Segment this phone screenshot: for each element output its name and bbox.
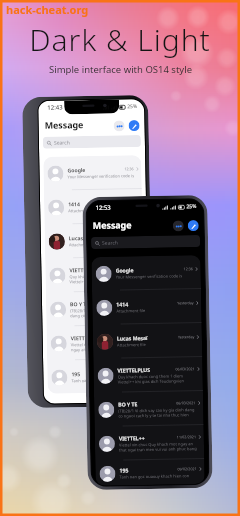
staticText: 06/03/2021 [117,300,137,305]
staticText: (TB)28/1 Vi dich vay cao ky gia dinh dan… [70,307,137,318]
button[interactable]: Google [43,155,142,191]
staticText: Yesterday [178,334,195,339]
staticText: VIETTELPLUS [117,365,176,374]
staticText: 12:53 [95,204,111,212]
staticText: 12:36 [124,166,134,171]
staticText: BO Y TE [70,299,117,307]
staticText: (TB)28/1 Vi dich vay cao ky gia dinh dan… [118,407,196,419]
button[interactable]: Lucas Mesaï [93,323,202,359]
staticText: Dark & Light [29,19,211,60]
staticText: hack-cheat.org [6,2,89,17]
button[interactable]: BO Y TE [46,291,144,327]
staticText: 12:43 [47,103,63,112]
staticText: 12:36 [183,266,194,271]
staticText: Message [93,218,132,231]
staticText: VIETTEL++ [119,433,177,442]
staticText: Attachment file [116,308,145,314]
staticText: 25% [127,103,137,110]
staticText: 06/03/2021 [116,266,136,271]
staticText: Yesterday [177,300,194,305]
staticText: 09/02/2021 [118,370,138,375]
staticText: 09/02/2021 [177,466,197,471]
staticText: Quy khach duoc cong them 1 diem Viettel+… [69,273,137,284]
staticText: 1414 [116,299,177,308]
staticText: Google [67,165,124,173]
button[interactable]: BO Y TE [94,391,204,427]
staticText: Google [115,265,184,274]
button[interactable]: Compose message [188,220,199,231]
staticText: VIETTELPLUS [69,265,116,273]
button[interactable]: VIETTELPLUS [45,257,144,293]
button[interactable]: Lucas Mesaï [44,223,143,259]
button[interactable]: 1414 [44,189,142,225]
staticText: 06/03/2021 [175,366,196,371]
button[interactable]: Compose message [128,120,140,131]
button[interactable]: 1414 [92,289,202,325]
staticText: VIETTEL++ [71,333,118,341]
staticText: Lucas Mesaï [117,333,178,342]
button[interactable]: Google [91,255,201,291]
button[interactable]: VIETTEL++ [95,425,204,461]
staticText: 11/02/2021 [118,334,138,339]
staticText: 25% [186,203,196,210]
button[interactable]: More options [113,120,125,131]
button[interactable]: VIETTEL++ [46,325,145,361]
staticText: 1414 [68,199,118,207]
staticText: Attachment file [69,242,98,247]
staticText: Search [54,139,70,147]
button[interactable]: More options [173,220,184,231]
staticText: 06/03/2021 [176,400,196,405]
button[interactable]: 195 [95,459,205,486]
staticText: Tanh oan goc ouaouy khach hien con duoc [119,473,198,480]
button[interactable]: Search [43,135,141,149]
staticText: Viettel xin chuc Quy khach mot ngay an t… [71,341,138,352]
staticText: Yesterday [119,234,136,239]
staticText: Message [44,118,84,131]
staticText: 195 [71,369,118,377]
button[interactable]: 195 [47,359,146,394]
button[interactable]: VIETTELPLUS [93,357,203,393]
staticText: Viettel xin chuc Quy khach mot ngay an t… [119,441,197,453]
staticText: Your Messenger verification code is G-07… [116,273,194,280]
staticText: Search [102,239,118,247]
staticText: Attachment file [68,208,97,213]
staticText: Your Messenger verification code is G-07… [67,173,135,179]
staticText: Attachment file [117,342,146,348]
staticText: Lucas Mesaï [69,233,119,241]
staticText: 195 [119,465,177,473]
button[interactable]: Search [91,235,200,249]
staticText: 11/02/2021 [177,434,197,439]
staticText: Simple interface with OS14 style [49,63,192,76]
staticText: Quy khach duoc cong them 1 diem Viettel+… [118,373,196,385]
staticText: BO Y TE [118,399,176,408]
staticText: Tanh oan goc ouaouy khach hien con duoc [71,377,138,383]
